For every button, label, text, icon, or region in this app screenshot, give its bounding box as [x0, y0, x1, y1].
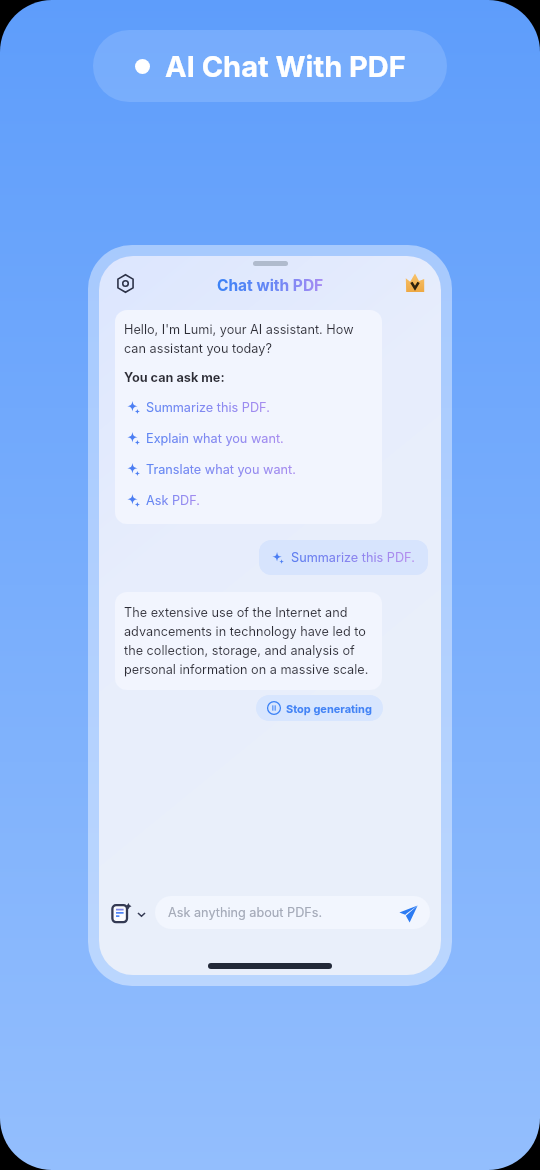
button[interactable]: Settings: [116, 274, 135, 293]
button[interactable]: Translate what you want.: [124, 454, 373, 485]
button[interactable]: Hello, I'm Lumi, your AI assistant. How …: [115, 310, 382, 524]
staticText: AI Chat With PDF: [165, 49, 406, 84]
button[interactable]: Explain what you want.: [124, 423, 373, 454]
button[interactable]: Summarize this PDF.: [259, 540, 428, 575]
button[interactable]: Send: [397, 902, 419, 924]
staticText: The extensive use of the Internet and ad…: [124, 605, 369, 677]
button[interactable]: Choose PDF: [109, 903, 149, 923]
button[interactable]: Summarize this PDF.: [124, 392, 373, 423]
staticText: Chat with PDF: [217, 276, 324, 295]
staticText: Summarize this PDF.: [146, 400, 270, 415]
staticText: You can ask me:: [124, 370, 225, 385]
staticText: Ask anything about PDFs.: [168, 905, 323, 920]
button[interactable]: Stop generating: [256, 695, 383, 721]
staticText: Ask PDF.: [146, 493, 200, 508]
staticText: Stop generating: [286, 702, 372, 715]
staticText: Translate what you want.: [146, 462, 296, 477]
staticText: Summarize this PDF.: [291, 550, 415, 565]
staticText: Hello, I'm Lumi, your AI assistant. How …: [124, 322, 354, 356]
button[interactable]: Premium: [405, 273, 425, 293]
button[interactable]: Ask PDF.: [124, 485, 373, 516]
button[interactable]: Ask anything about PDFs.: [155, 896, 430, 929]
button[interactable]: The extensive use of the Internet and ad…: [115, 592, 382, 690]
button[interactable]: AI Chat With PDF: [93, 30, 447, 102]
staticText: Explain what you want.: [146, 431, 284, 446]
